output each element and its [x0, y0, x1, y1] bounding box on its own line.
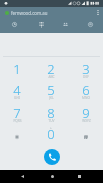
staticText: 7 [13, 104, 21, 122]
staticText: ABC [48, 75, 55, 79]
button[interactable]: 4 [0, 80, 34, 102]
button[interactable]: 3 [69, 59, 103, 81]
button[interactable]: Back [16, 170, 28, 183]
button[interactable]: Favourites [77, 16, 103, 33]
button[interactable]: 6 [69, 80, 103, 102]
button[interactable]: Dialpad [28, 16, 54, 33]
staticText: 5 [47, 81, 55, 99]
staticText: GHI [14, 96, 20, 100]
button[interactable]: 5 [34, 80, 68, 102]
staticText: DEF [83, 75, 89, 79]
button[interactable]: 1 [0, 59, 34, 81]
staticText: 9 [82, 104, 90, 122]
button[interactable]: Contacts [52, 16, 78, 33]
button[interactable]: 2 [34, 59, 68, 81]
staticText: 2 [47, 60, 55, 78]
button[interactable]: Home [46, 170, 58, 183]
staticText: TUV [48, 119, 55, 123]
staticText: PQRS [13, 119, 22, 123]
staticText: 1 [13, 60, 21, 78]
button[interactable]: Call [44, 149, 60, 165]
button[interactable]: 7 [0, 103, 34, 125]
button[interactable]: Recents [73, 170, 85, 183]
staticText: MNO [82, 96, 90, 100]
staticText: 4 [13, 81, 21, 99]
staticText: JKL [49, 96, 54, 100]
staticText: 6 [82, 81, 90, 99]
button[interactable]: 9 [69, 103, 103, 125]
button[interactable]: 8 [34, 103, 68, 125]
staticText: fernwood.com.au [11, 10, 48, 16]
button[interactable]: Pound [69, 124, 103, 146]
button[interactable]: 0 [34, 124, 68, 146]
staticText: + [50, 126, 52, 130]
button[interactable]: Recents [1, 16, 27, 33]
staticText: 3 [82, 60, 90, 78]
button[interactable]: More options [93, 8, 103, 17]
staticText: 0 [47, 125, 55, 143]
staticText: 8 [47, 104, 55, 122]
staticText: WXYZ [82, 119, 91, 123]
button[interactable]: Star [0, 124, 34, 146]
